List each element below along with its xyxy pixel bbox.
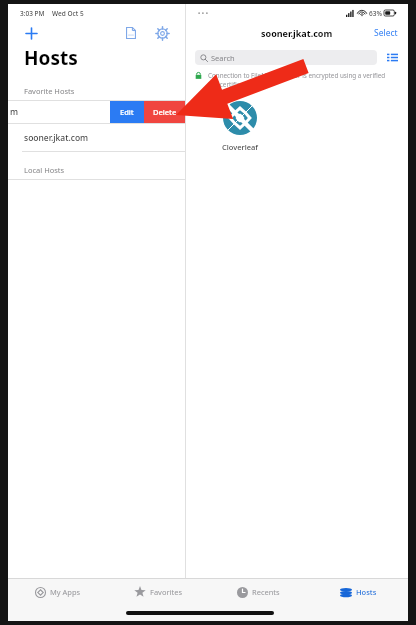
- button[interactable]: My Apps: [8, 579, 108, 605]
- staticText: Local Hosts: [24, 165, 65, 175]
- button[interactable]: Hosts: [308, 579, 408, 605]
- button[interactable]: Select: [364, 27, 408, 39]
- button[interactable]: Settings: [151, 22, 173, 44]
- button[interactable]: Favorites: [108, 579, 208, 605]
- staticText: 3:03 PM: [20, 9, 45, 18]
- button[interactable]: sooner.jkat.com: [8, 124, 185, 151]
- staticText: Edit: [120, 107, 134, 117]
- staticText: Recents: [252, 587, 280, 597]
- staticText: Hosts: [356, 587, 377, 597]
- staticText: 63%: [369, 9, 382, 18]
- staticText: • • •: [198, 9, 208, 17]
- button[interactable]: Cloverleaf: [210, 101, 270, 152]
- button[interactable]: New file: [120, 22, 142, 44]
- staticText: Favorites: [150, 587, 183, 597]
- button[interactable]: Search: [195, 50, 377, 65]
- button[interactable]: Delete: [144, 101, 185, 123]
- staticText: sooner.jkat.com: [24, 132, 89, 144]
- button[interactable]: Recents: [208, 579, 308, 605]
- staticText: Wed Oct 5: [52, 9, 84, 18]
- staticText: Connection to FileMaker Server is encryp…: [208, 71, 396, 89]
- button[interactable]: Add host: [20, 22, 42, 44]
- staticText: My Apps: [50, 587, 81, 597]
- staticText: Cloverleaf: [222, 142, 258, 152]
- staticText: m: [10, 106, 19, 118]
- button[interactable]: List view: [385, 50, 399, 64]
- staticText: Favorite Hosts: [24, 86, 75, 96]
- staticText: Select: [374, 27, 398, 39]
- button[interactable]: Edit: [110, 101, 144, 123]
- staticText: Delete: [153, 107, 177, 117]
- staticText: sooner.jkat.com: [261, 27, 333, 39]
- staticText: Search: [211, 53, 235, 63]
- staticText: Hosts: [24, 45, 78, 71]
